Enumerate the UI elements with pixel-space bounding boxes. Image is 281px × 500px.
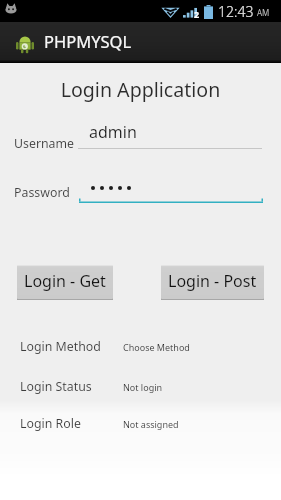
button[interactable]: Login Status xyxy=(0,373,281,399)
staticText: Login Application xyxy=(0,76,281,103)
staticText: 2 xyxy=(194,8,200,20)
button[interactable]: Login Method xyxy=(0,333,281,359)
staticText: Login Status xyxy=(20,378,92,395)
other: Notification xyxy=(4,3,18,15)
staticText: AM xyxy=(257,7,270,18)
staticText: Login - Post xyxy=(168,270,257,292)
staticText: Username xyxy=(14,135,75,152)
button[interactable]: Login - Get xyxy=(17,265,113,299)
button[interactable] xyxy=(79,175,263,204)
staticText: Login Method xyxy=(20,338,101,355)
staticText: Password xyxy=(14,184,70,201)
staticText: admin xyxy=(89,121,137,143)
staticText: 12:43 xyxy=(218,2,254,21)
staticText: Not login xyxy=(123,381,163,393)
other: App icon xyxy=(15,34,35,54)
button[interactable]: Login - Post xyxy=(161,265,264,299)
staticText: Choose Method xyxy=(123,341,190,353)
staticText: Not assigned xyxy=(123,418,179,430)
staticText: Login - Get xyxy=(24,270,106,292)
staticText: PHPMYSQL xyxy=(44,30,132,52)
button[interactable]: Login Role xyxy=(0,410,281,436)
staticText: Login Role xyxy=(20,415,81,432)
button[interactable]: admin xyxy=(78,119,262,149)
